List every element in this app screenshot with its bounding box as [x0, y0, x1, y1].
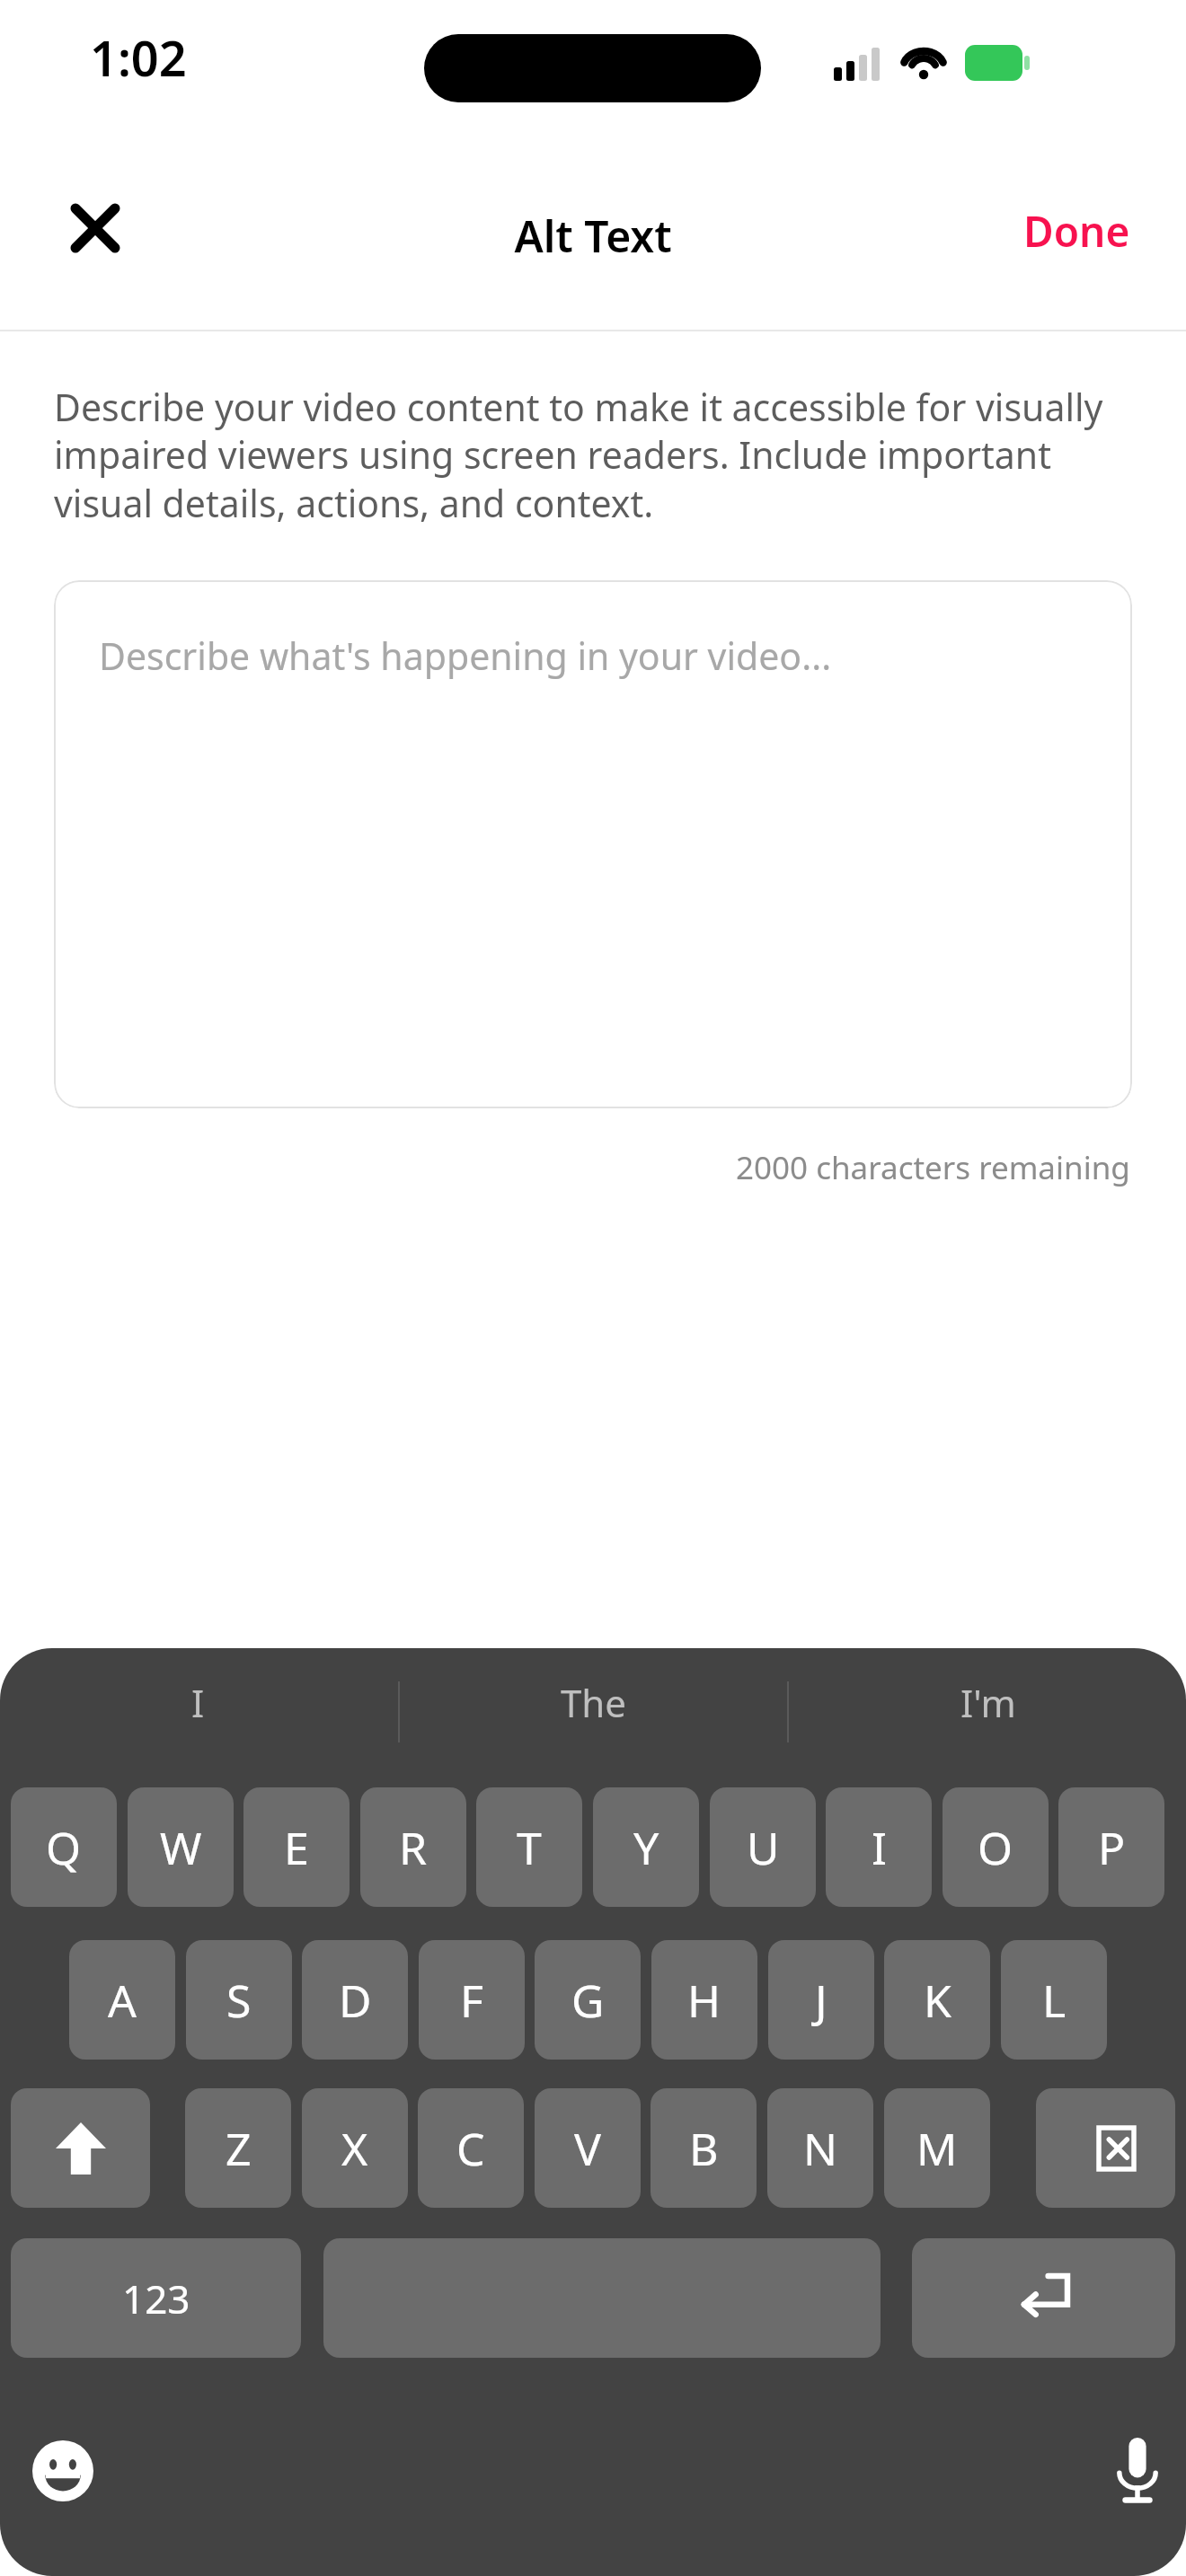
button[interactable]: F [419, 1940, 525, 2060]
button[interactable]: G [535, 1940, 641, 2060]
button[interactable]: Emoji [20, 2428, 106, 2514]
staticText: D [339, 1970, 372, 2031]
staticText: L [1042, 1970, 1067, 2031]
staticText: X [341, 2118, 368, 2179]
staticText: O [978, 1817, 1013, 1878]
button[interactable]: Space [323, 2238, 881, 2358]
staticText: C [456, 2118, 485, 2179]
staticText: Q [46, 1817, 82, 1878]
button[interactable]: Shift [11, 2088, 150, 2208]
staticText: B [689, 2118, 719, 2179]
staticText: 1:02 [90, 24, 187, 91]
staticText: I [191, 1677, 205, 1728]
staticText: 2000 characters remaining [736, 1146, 1130, 1189]
button[interactable]: L [1001, 1940, 1107, 2060]
staticText: 123 [122, 2272, 190, 2325]
button[interactable]: T [476, 1787, 582, 1907]
button[interactable]: I [826, 1787, 932, 1907]
button[interactable]: C [418, 2088, 524, 2208]
button[interactable]: Close [50, 183, 140, 273]
button[interactable]: R [360, 1787, 466, 1907]
staticText: P [1098, 1817, 1126, 1878]
button[interactable]: I [0, 1648, 395, 1756]
button[interactable]: W [128, 1787, 234, 1907]
button[interactable]: J [768, 1940, 874, 2060]
staticText: S [226, 1970, 252, 2031]
button[interactable]: Done [1004, 183, 1150, 279]
button[interactable]: O [943, 1787, 1049, 1907]
staticText: V [574, 2118, 601, 2179]
button[interactable]: U [710, 1787, 816, 1907]
staticText: The [561, 1677, 626, 1728]
button[interactable]: E [243, 1787, 350, 1907]
button[interactable]: K [884, 1940, 990, 2060]
staticText: G [571, 1970, 605, 2031]
button[interactable]: D [302, 1940, 408, 2060]
button[interactable]: P [1058, 1787, 1164, 1907]
staticText: K [924, 1970, 951, 2031]
button[interactable]: S [186, 1940, 292, 2060]
button[interactable]: 123 [11, 2238, 301, 2358]
button[interactable]: B [651, 2088, 757, 2208]
staticText: Alt Text [0, 207, 1186, 265]
staticText: Y [633, 1817, 659, 1878]
staticText: A [108, 1970, 137, 2031]
button[interactable]: M [884, 2088, 990, 2208]
staticText: U [747, 1817, 780, 1878]
button[interactable]: H [651, 1940, 757, 2060]
button[interactable]: The [395, 1648, 791, 1756]
staticText: T [517, 1817, 542, 1878]
staticText: Describe your video content to make it a… [54, 382, 1134, 528]
button[interactable]: V [535, 2088, 641, 2208]
staticText: Describe what's happening in your video.… [99, 631, 832, 681]
staticText: R [399, 1817, 428, 1878]
button[interactable]: Dictate [1094, 2428, 1181, 2514]
button[interactable]: A [69, 1940, 175, 2060]
button[interactable]: X [302, 2088, 408, 2208]
staticText: Done [1023, 203, 1130, 260]
button[interactable]: Z [185, 2088, 291, 2208]
staticText: E [284, 1817, 309, 1878]
staticText: Z [226, 2118, 252, 2179]
staticText: I [872, 1817, 887, 1878]
staticText: W [160, 1817, 202, 1878]
button[interactable]: Backspace [1036, 2088, 1175, 2208]
button[interactable]: Y [593, 1787, 699, 1907]
staticText: I'm [960, 1677, 1016, 1728]
staticText: M [916, 2118, 958, 2179]
staticText: N [803, 2118, 837, 2179]
button[interactable]: Q [11, 1787, 117, 1907]
staticText: H [687, 1970, 721, 2031]
button[interactable]: I'm [791, 1648, 1186, 1756]
button[interactable]: Alt text input [54, 580, 1132, 1108]
button[interactable]: Return [912, 2238, 1175, 2358]
staticText: J [815, 1970, 828, 2031]
button[interactable]: N [767, 2088, 873, 2208]
staticText: F [460, 1970, 483, 2031]
